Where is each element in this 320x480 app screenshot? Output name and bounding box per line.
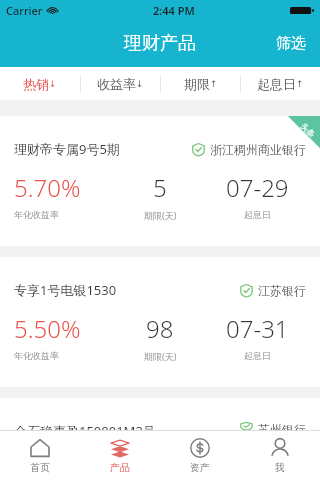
staticText: 年化收益率: [14, 209, 59, 220]
button[interactable]: 金石稳事盈150801M3号: [0, 398, 320, 430]
button[interactable]: 收益率: [81, 67, 160, 100]
staticText: Carrier: [6, 3, 43, 18]
staticText: 理财帝专属9号5期: [14, 140, 120, 158]
staticText: 起息日: [257, 76, 296, 92]
staticText: 金石稳事盈150801M3号: [14, 422, 156, 430]
staticText: ↑: [296, 79, 304, 89]
other: Assets: [190, 438, 210, 458]
button[interactable]: Home: [0, 431, 80, 480]
button[interactable]: 专享1号电银1530: [0, 257, 320, 387]
staticText: 5.70%: [14, 171, 81, 204]
staticText: 苏州银行: [258, 422, 306, 430]
staticText: ↓: [136, 79, 144, 89]
staticText: 07-29: [226, 171, 289, 204]
button[interactable]: 期限: [161, 67, 240, 100]
staticText: 理财产品: [124, 32, 196, 55]
button[interactable]: 筛选: [262, 26, 320, 61]
other: Products: [110, 438, 130, 458]
staticText: 浙江稠州商业银行: [210, 142, 306, 157]
staticText: 98: [146, 312, 174, 345]
staticText: 07-31: [226, 312, 289, 345]
staticText: 5: [153, 171, 167, 204]
staticText: 我: [275, 461, 285, 474]
other: Home: [30, 438, 50, 458]
staticText: 起息日: [244, 350, 271, 361]
button[interactable]: 热销: [0, 67, 80, 100]
staticText: 2:44 PM: [153, 3, 195, 18]
staticText: 资产: [190, 461, 210, 474]
staticText: 收益率: [97, 76, 136, 92]
staticText: 头条: [299, 121, 317, 139]
other: Me: [270, 438, 290, 458]
staticText: 年化收益率: [14, 350, 59, 361]
staticText: 期限: [184, 76, 210, 92]
button[interactable]: 起息日: [241, 67, 320, 100]
staticText: 筛选: [276, 34, 306, 53]
staticText: 起息日: [244, 209, 271, 220]
staticText: 首页: [30, 461, 50, 474]
button[interactable]: Products: [80, 431, 160, 480]
staticText: 期限(天): [144, 350, 177, 362]
staticText: 热销: [23, 76, 49, 92]
staticText: 江苏银行: [258, 283, 306, 298]
staticText: ↓: [49, 79, 57, 89]
staticText: 产品: [110, 461, 130, 474]
staticText: 期限(天): [144, 209, 177, 221]
button[interactable]: Me: [240, 431, 320, 480]
staticText: 专享1号电银1530: [14, 281, 117, 299]
button[interactable]: Assets: [160, 431, 240, 480]
button[interactable]: 理财帝专属9号5期: [0, 116, 320, 246]
staticText: ↑: [210, 79, 218, 89]
staticText: 5.50%: [14, 312, 81, 345]
